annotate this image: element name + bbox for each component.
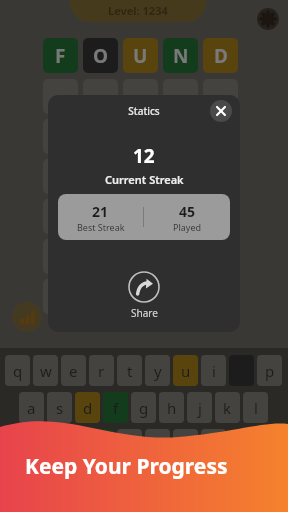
staticText: u	[181, 361, 191, 381]
staticText: e	[69, 361, 78, 381]
staticText: F	[55, 43, 66, 69]
button[interactable]: Level: 1234	[70, 0, 206, 22]
button[interactable]: i	[201, 355, 226, 386]
staticText: D	[214, 43, 228, 69]
staticText: 45	[179, 202, 196, 221]
button[interactable]: f	[103, 392, 128, 423]
button[interactable]: e	[61, 355, 86, 386]
button[interactable]: u	[173, 355, 198, 386]
staticText: r	[98, 361, 105, 381]
staticText: Best Streak	[77, 221, 125, 233]
button[interactable]: Statistics	[12, 302, 42, 332]
staticText: b	[153, 435, 163, 455]
staticText: 21	[92, 202, 109, 221]
staticText: w	[40, 361, 52, 381]
button[interactable]: a	[19, 392, 44, 423]
button[interactable]: x	[61, 429, 86, 460]
button[interactable]: n	[173, 429, 198, 460]
button[interactable]: t	[117, 355, 142, 386]
button[interactable]: v	[117, 429, 142, 460]
staticText: O	[93, 43, 109, 69]
button[interactable]: y	[145, 355, 170, 386]
staticText: p	[265, 361, 275, 381]
button[interactable]: Settings	[257, 8, 279, 30]
button[interactable]: m	[201, 429, 226, 460]
button[interactable]: q	[5, 355, 30, 386]
button[interactable]: Close	[210, 100, 232, 122]
staticText: a	[27, 398, 36, 418]
staticText: n	[181, 435, 191, 455]
staticText: t	[127, 361, 133, 381]
staticText: y	[154, 361, 162, 381]
button[interactable]: c	[89, 429, 114, 460]
staticText: f	[113, 398, 119, 418]
button[interactable]: Share	[48, 271, 240, 320]
staticText: Level: 1234	[108, 3, 168, 18]
staticText: l	[254, 398, 258, 418]
button[interactable]: b	[145, 429, 170, 460]
staticText: Keep Your Progress	[25, 452, 228, 481]
staticText: i	[212, 361, 216, 381]
button[interactable]: k	[215, 392, 240, 423]
staticText: s	[56, 398, 64, 418]
staticText: d	[83, 398, 93, 418]
button[interactable]: w	[33, 355, 58, 386]
button[interactable]: p	[257, 355, 282, 386]
staticText: k	[223, 398, 232, 418]
staticText: g	[139, 398, 149, 418]
staticText: v	[126, 435, 134, 455]
staticText: Played	[173, 221, 202, 233]
button[interactable]: g	[131, 392, 156, 423]
staticText: j	[198, 398, 202, 418]
staticText: Share	[131, 306, 158, 320]
staticText: N	[173, 43, 189, 69]
staticText: Current Streak	[105, 172, 184, 187]
button[interactable]: z	[33, 429, 58, 460]
staticText: 12	[133, 143, 155, 169]
button[interactable]: h	[159, 392, 184, 423]
button[interactable]: r	[89, 355, 114, 386]
button[interactable]: j	[187, 392, 212, 423]
staticText: q	[13, 361, 23, 381]
staticText: Statics	[48, 104, 240, 118]
staticText: h	[167, 398, 177, 418]
button[interactable]: d	[75, 392, 100, 423]
button[interactable]: l	[243, 392, 268, 423]
button[interactable]: s	[47, 392, 72, 423]
staticText: U	[133, 43, 148, 69]
